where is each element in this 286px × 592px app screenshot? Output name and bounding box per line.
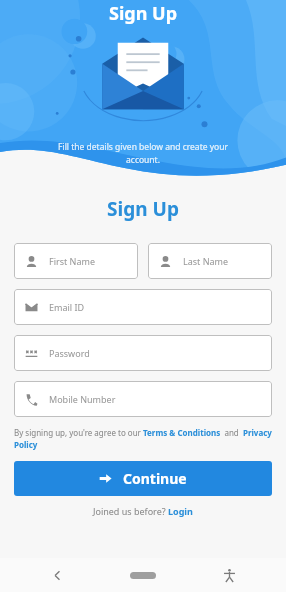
button[interactable]: Continue (14, 461, 272, 496)
button[interactable]: Back (44, 562, 70, 588)
staticText: Joined us before? (93, 505, 168, 517)
button[interactable]: First Name (14, 243, 138, 279)
button[interactable]: By signing up, you're agree to our Terms… (14, 427, 272, 451)
button[interactable]: Home (126, 565, 160, 585)
staticText: Last Name (183, 255, 229, 267)
staticText: Email ID (49, 301, 85, 313)
staticText: First Name (49, 255, 95, 267)
button[interactable]: Mobile Number (14, 381, 272, 417)
staticText: Password (49, 347, 90, 359)
staticText: Sign Up (0, 1, 286, 26)
button[interactable]: Accessibility (216, 562, 242, 588)
staticText: Continue (123, 469, 187, 488)
staticText: Sign Up (0, 196, 286, 222)
button[interactable]: Password (14, 335, 272, 371)
staticText: Mobile Number (49, 393, 116, 405)
staticText: Fill the details given below and create … (40, 141, 246, 166)
staticText: Login (168, 505, 193, 517)
button[interactable]: Email ID (14, 289, 272, 325)
button[interactable]: Last Name (148, 243, 272, 279)
button[interactable]: Joined us before? (93, 505, 193, 517)
